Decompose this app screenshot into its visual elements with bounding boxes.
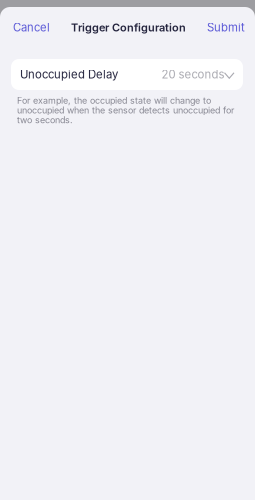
staticText: Unoccupied Delay xyxy=(20,68,118,81)
button[interactable]: Unoccupied Delay xyxy=(11,59,243,90)
staticText: 20 seconds xyxy=(161,68,224,81)
staticText: Trigger Configuration xyxy=(71,21,186,34)
button[interactable]: Cancel xyxy=(9,16,54,39)
staticText: For example, the occupied state will cha… xyxy=(17,95,234,125)
staticText: Cancel xyxy=(13,21,50,34)
staticText: Submit xyxy=(207,21,245,34)
button[interactable]: Submit xyxy=(203,16,249,39)
